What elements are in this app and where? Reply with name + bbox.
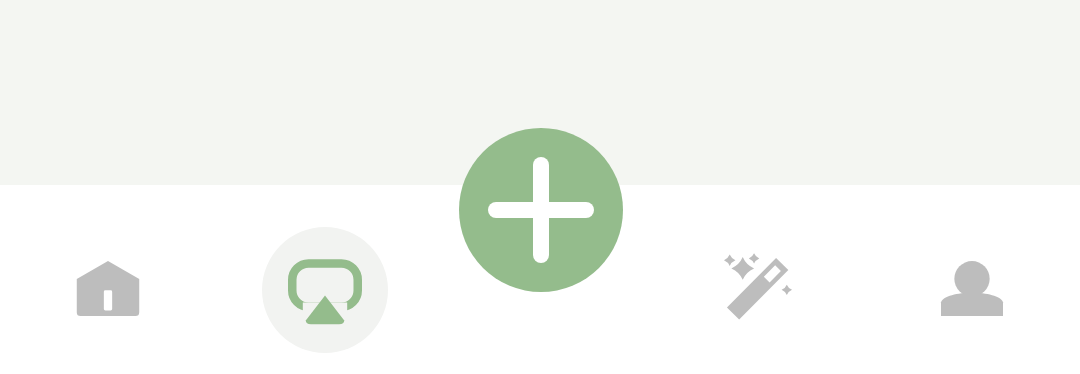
button[interactable]: Effects	[677, 210, 837, 365]
button[interactable]: Home	[28, 210, 188, 365]
button[interactable]: Profile	[892, 210, 1052, 365]
button[interactable]: Cast	[245, 210, 405, 365]
button[interactable]: Add	[459, 128, 623, 292]
